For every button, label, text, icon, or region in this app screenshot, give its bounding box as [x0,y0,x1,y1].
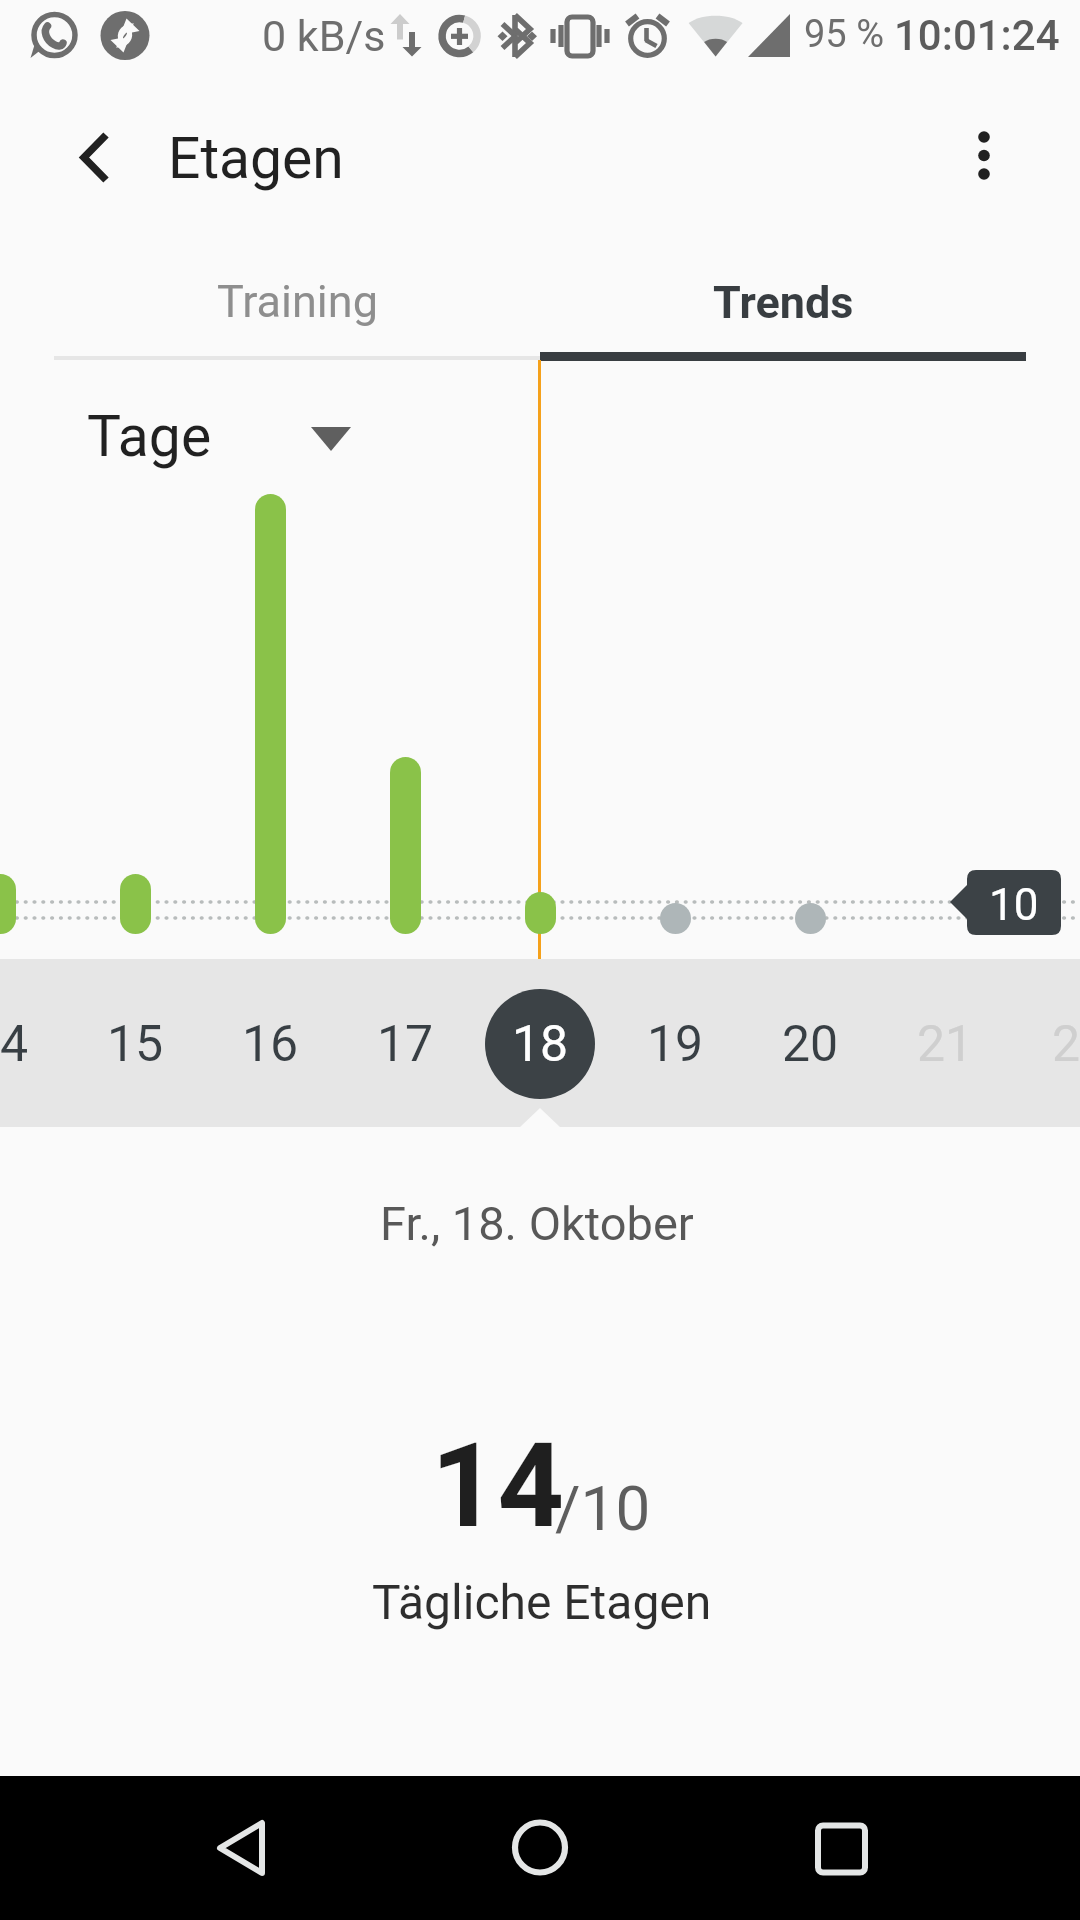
button[interactable]: 22 [1025,989,1080,1099]
staticText: Fr., 18. Oktober [380,1196,694,1251]
button[interactable]: 21 [890,989,1000,1099]
staticText: 14 [431,1418,565,1554]
button[interactable]: Back [48,108,144,204]
staticText: 21 [917,1015,974,1074]
staticText: 18 [512,1015,569,1074]
staticText: 14 [0,1015,29,1074]
staticText: 10 [989,879,1039,931]
staticText: 15 [107,1015,164,1074]
button[interactable]: Home [492,1800,588,1896]
button[interactable]: 19 [620,989,730,1099]
staticText: Etagen [168,125,344,192]
staticText: 16 [242,1015,299,1074]
button[interactable]: Trends [540,251,1026,356]
button[interactable]: More options [938,108,1030,200]
button[interactable]: Training [54,251,540,356]
staticText: Training [217,275,378,328]
staticText: 17 [377,1015,434,1074]
button[interactable]: 17 [350,989,460,1099]
button[interactable]: Change period [291,407,371,487]
staticText: 19 [647,1015,704,1074]
button[interactable]: 18 [485,989,595,1099]
button[interactable]: 15 [80,989,190,1099]
staticText: 10:01:24 [894,11,1060,60]
button[interactable]: 14 [0,989,55,1099]
button[interactable]: Recent apps [792,1800,888,1896]
button[interactable]: Back [192,1800,288,1896]
staticText: 22 [1052,1015,1080,1074]
staticText: 95 % [804,12,884,57]
staticText: 0 kB/s [262,11,386,61]
button[interactable]: 16 [215,989,325,1099]
staticText: /10 [555,1472,651,1545]
staticText: 20 [782,1015,839,1074]
staticText: Tage [87,403,212,470]
button[interactable]: 20 [755,989,865,1099]
staticText: Tägliche Etagen [372,1574,712,1630]
staticText: Trends [713,276,854,329]
